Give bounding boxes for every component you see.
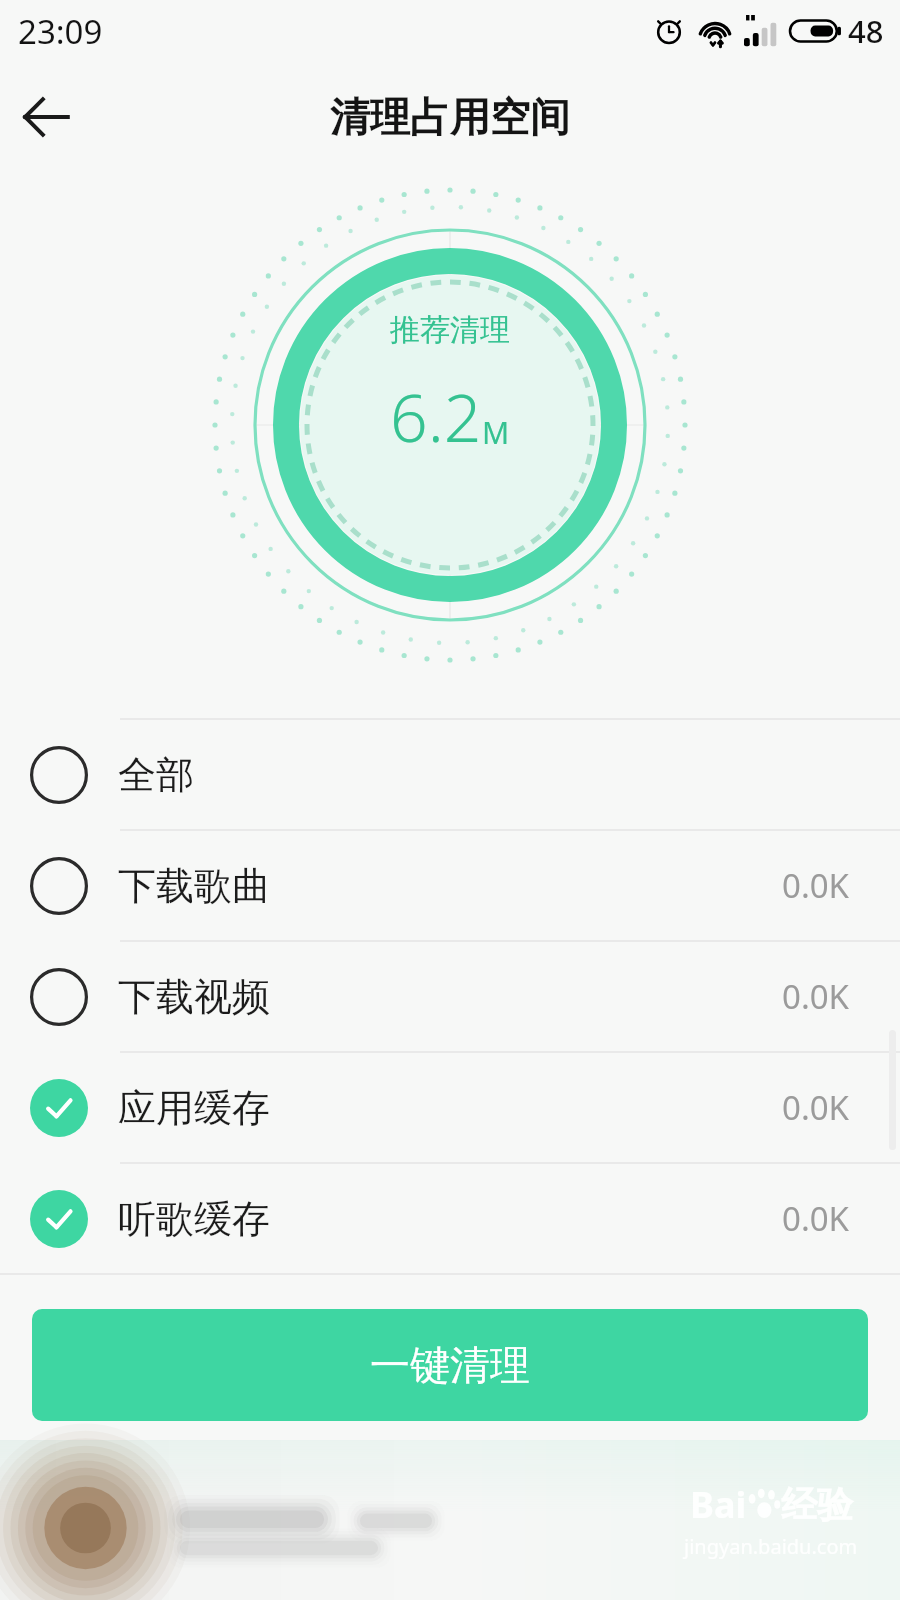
button[interactable]: 下载歌曲 — [0, 831, 900, 940]
staticText: 下载歌曲 — [118, 862, 270, 910]
staticText: 推荐清理 — [390, 311, 510, 349]
staticText: M — [482, 412, 510, 453]
staticText: jingyan.baidu.com — [684, 1533, 858, 1560]
staticText: 23:09 — [18, 9, 103, 54]
staticText: 经验 — [781, 1482, 853, 1527]
button[interactable]: 听歌缓存 — [0, 1164, 900, 1273]
button[interactable]: 一键清理 — [32, 1309, 868, 1421]
staticText: 0.0K — [782, 974, 850, 1019]
staticText: 全部 — [118, 751, 194, 799]
staticText: 下载视频 — [118, 973, 270, 1021]
staticText: Bai — [690, 1480, 747, 1529]
staticText: 6.2 — [390, 371, 482, 461]
button[interactable]: 下载视频 — [0, 942, 900, 1051]
staticText: 48 — [848, 10, 884, 52]
button[interactable]: 应用缓存 — [0, 1053, 900, 1162]
staticText: 清理占用空间 — [330, 92, 570, 142]
button[interactable]: 全部 — [0, 720, 900, 829]
staticText: 0.0K — [782, 863, 850, 908]
staticText: 0.0K — [782, 1085, 850, 1130]
button[interactable]: Back — [0, 71, 92, 163]
staticText: 一键清理 — [370, 1340, 530, 1390]
staticText: 0.0K — [782, 1196, 850, 1241]
staticText: 应用缓存 — [118, 1084, 270, 1132]
staticText: 听歌缓存 — [118, 1195, 270, 1243]
